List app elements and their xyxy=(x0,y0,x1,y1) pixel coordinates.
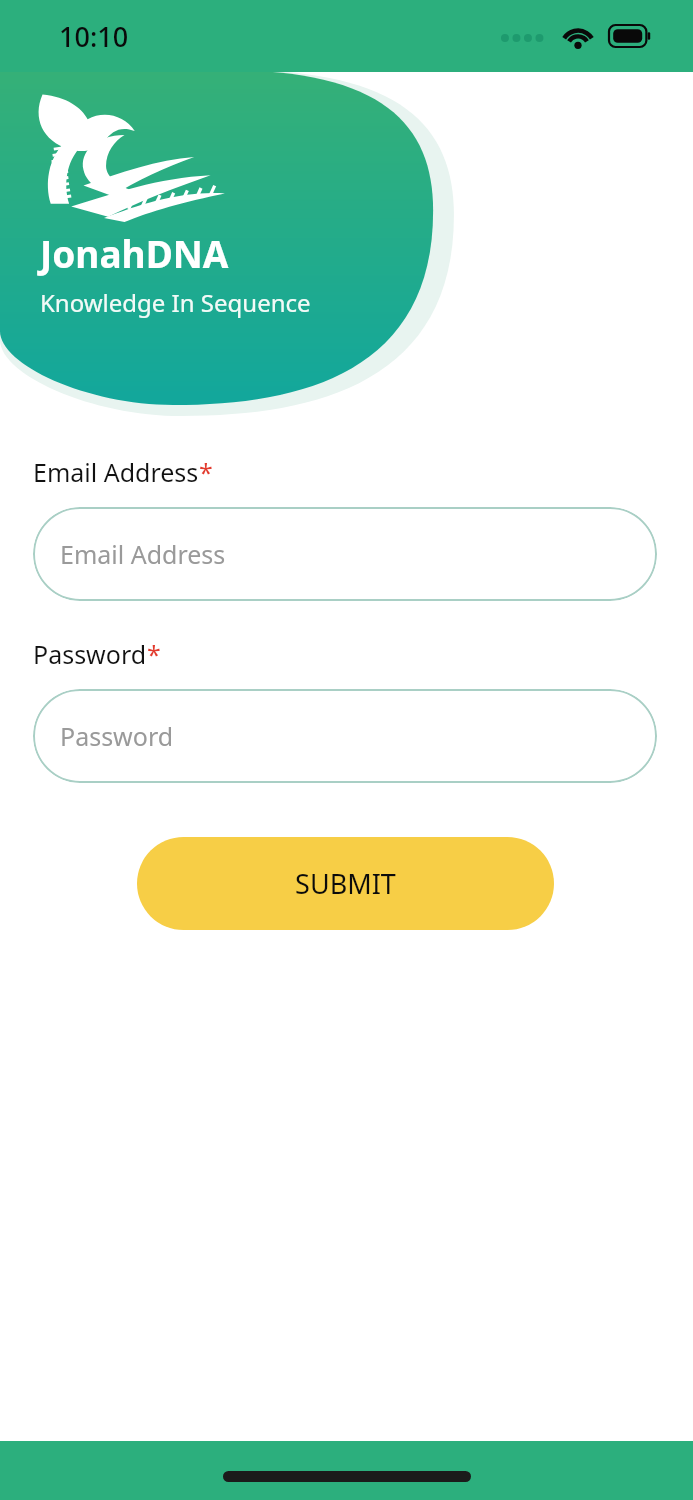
staticText: JonahDNA xyxy=(40,228,229,278)
staticText: Knowledge In Sequence xyxy=(40,286,311,319)
button[interactable]: Email Address xyxy=(33,507,657,601)
staticText: * xyxy=(199,455,213,489)
staticText: 10:10 xyxy=(59,18,129,55)
staticText: Email Address xyxy=(33,455,199,489)
button[interactable]: Password xyxy=(33,689,657,783)
staticText: Password xyxy=(33,637,147,671)
button[interactable]: SUBMIT xyxy=(137,837,554,930)
staticText: SUBMIT xyxy=(295,865,396,902)
staticText: * xyxy=(147,637,161,671)
staticText: Password xyxy=(60,719,174,753)
staticText: Email Address xyxy=(60,537,226,571)
